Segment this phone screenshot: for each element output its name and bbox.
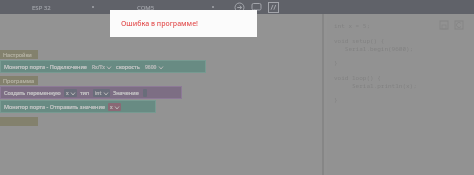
button[interactable]: Настройки [0,50,38,59]
staticText: int [95,90,102,97]
staticText: void setup() { [334,37,385,45]
staticText: COM5 [137,4,155,12]
staticText: Программа [3,77,34,84]
button[interactable]: Программа [0,76,38,85]
staticText: } [334,59,338,67]
button[interactable]: Монитор порта - Подключение [0,60,206,73]
button[interactable]: Ошибка в программе! [110,10,257,37]
staticText: скорость [116,63,140,70]
staticText: Serial.println(x); [334,82,417,90]
staticText: Serial.begin(9600); [334,45,414,53]
button[interactable]: Upload [234,2,245,13]
button[interactable]: 9600 [145,63,163,71]
button[interactable]: int [95,89,108,97]
button[interactable]: Toggle code view [268,2,279,13]
button[interactable]: Rx/Tx [92,63,111,71]
staticText: ESP 32 [32,4,51,12]
staticText: Rx/Tx [92,64,105,71]
button[interactable]: Copy code [454,20,464,30]
staticText: void loop() { [334,74,381,82]
staticText: Настройки [3,51,32,58]
button[interactable]: Serial monitor [251,2,262,13]
button[interactable]: Создать переменную [0,86,182,99]
staticText: Ошибка в программе! [121,19,198,29]
staticText: x [66,90,69,97]
staticText: тип [80,89,90,96]
staticText: 9600 [145,64,157,71]
button[interactable]: Монитор порта - Отправить значение [0,100,156,113]
staticText: Значение [113,89,139,96]
staticText: Создать переменную [4,89,61,96]
staticText: Монитор порта - Отправить значение [4,103,105,110]
staticText: x [110,104,113,111]
staticText: } [334,96,338,104]
button[interactable]: x [110,103,119,111]
staticText: Монитор порта - Подключение [4,63,87,70]
staticText: int x = 5; [334,22,371,30]
button[interactable]: x [66,89,75,97]
